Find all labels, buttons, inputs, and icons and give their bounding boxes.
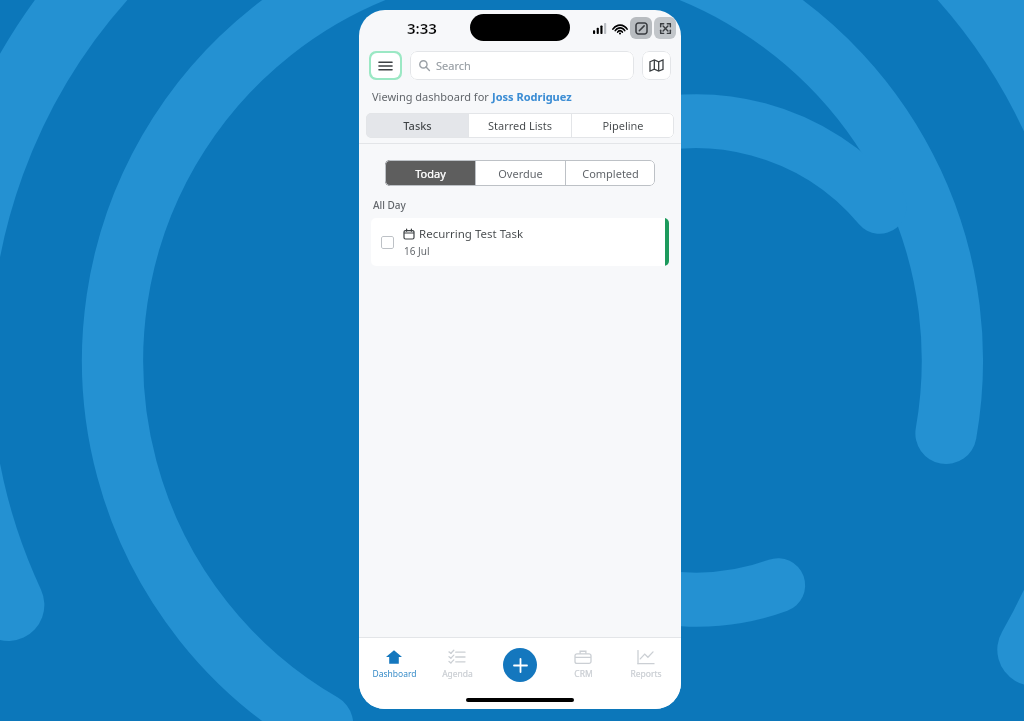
staticText: Starred Lists — [488, 118, 552, 133]
button[interactable]: Dashboard — [365, 649, 423, 680]
button[interactable]: Tasks — [366, 113, 468, 138]
staticText: Agenda — [442, 668, 473, 680]
staticText: Joss Rodriguez — [492, 89, 572, 104]
staticText: Pipeline — [602, 118, 644, 133]
button[interactable]: Complete task — [381, 236, 394, 249]
staticText: Reports — [630, 668, 662, 680]
staticText: 3:33 — [407, 18, 437, 38]
button[interactable]: Today — [385, 160, 475, 186]
button[interactable]: Add — [503, 648, 537, 682]
staticText: Dashboard — [372, 668, 417, 680]
staticText: 16 Jul — [404, 244, 430, 258]
button[interactable]: Joss Rodriguez — [492, 89, 572, 104]
button[interactable]: Starred Lists — [469, 113, 571, 138]
button[interactable]: Pipeline — [572, 113, 674, 138]
staticText: Search — [436, 58, 471, 73]
staticText: Tasks — [403, 118, 432, 133]
staticText: Viewing dashboard for — [372, 89, 492, 104]
button[interactable]: Overdue — [476, 160, 565, 186]
button[interactable]: Search — [410, 51, 634, 80]
button[interactable]: Map — [642, 51, 671, 80]
staticText: Recurring Test Task — [419, 226, 524, 242]
staticText: CRM — [574, 668, 593, 680]
staticText: Today — [415, 166, 446, 181]
button[interactable]: Agenda — [428, 649, 486, 680]
button[interactable]: Reports — [617, 649, 675, 680]
button[interactable]: CRM — [554, 649, 612, 680]
staticText: All Day — [373, 198, 406, 212]
staticText: Overdue — [498, 166, 543, 181]
staticText: Completed — [582, 166, 639, 181]
button[interactable]: Menu — [371, 53, 400, 78]
button[interactable]: Complete task — [371, 218, 669, 266]
button[interactable]: Completed — [566, 160, 655, 186]
